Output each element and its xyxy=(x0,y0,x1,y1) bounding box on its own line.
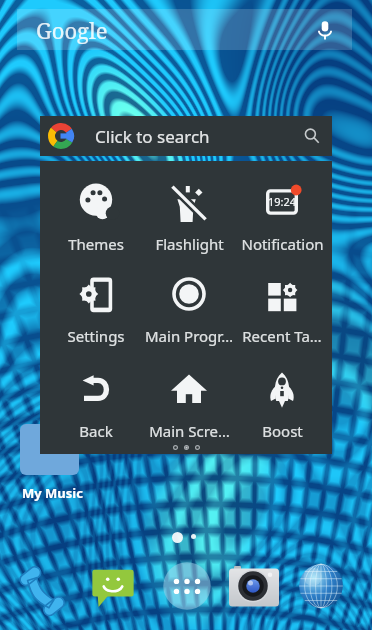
staticText: Main Progr… xyxy=(145,326,233,346)
staticText: My Music xyxy=(22,484,83,502)
button[interactable]: Main Progr… xyxy=(145,274,233,346)
staticText: Flashlight xyxy=(155,234,224,254)
other: Voice search xyxy=(314,19,336,41)
button[interactable]: Settings xyxy=(52,274,140,346)
button[interactable]: Camera xyxy=(229,561,279,611)
button[interactable]: Flashlight xyxy=(145,182,233,254)
staticText: Boost xyxy=(262,421,303,441)
button[interactable]: Messaging xyxy=(89,562,137,610)
button[interactable]: My Music xyxy=(20,424,79,475)
button[interactable]: Back xyxy=(52,369,140,441)
button[interactable]: Google xyxy=(17,9,352,50)
staticText: Settings xyxy=(67,326,125,346)
staticText: Back xyxy=(79,421,113,441)
button[interactable]: Apps xyxy=(160,559,214,613)
button[interactable]: Boost xyxy=(238,369,326,441)
button[interactable]: Themes xyxy=(52,182,140,254)
staticText: Main Scre… xyxy=(149,421,230,441)
staticText: 19:24 xyxy=(268,194,297,209)
button[interactable]: Recent Ta… xyxy=(238,274,326,346)
staticText: Google xyxy=(36,15,108,45)
button[interactable]: 19:24 xyxy=(238,182,326,254)
staticText: Themes xyxy=(68,234,124,254)
button[interactable]: Phone xyxy=(20,559,74,613)
button[interactable]: Click to search xyxy=(40,116,332,156)
staticText: Recent Ta… xyxy=(242,326,322,346)
staticText: Notification xyxy=(241,234,324,254)
button[interactable]: Browser xyxy=(295,560,347,612)
button[interactable]: Main Scre… xyxy=(145,369,233,441)
staticText: Click to search xyxy=(95,125,210,148)
